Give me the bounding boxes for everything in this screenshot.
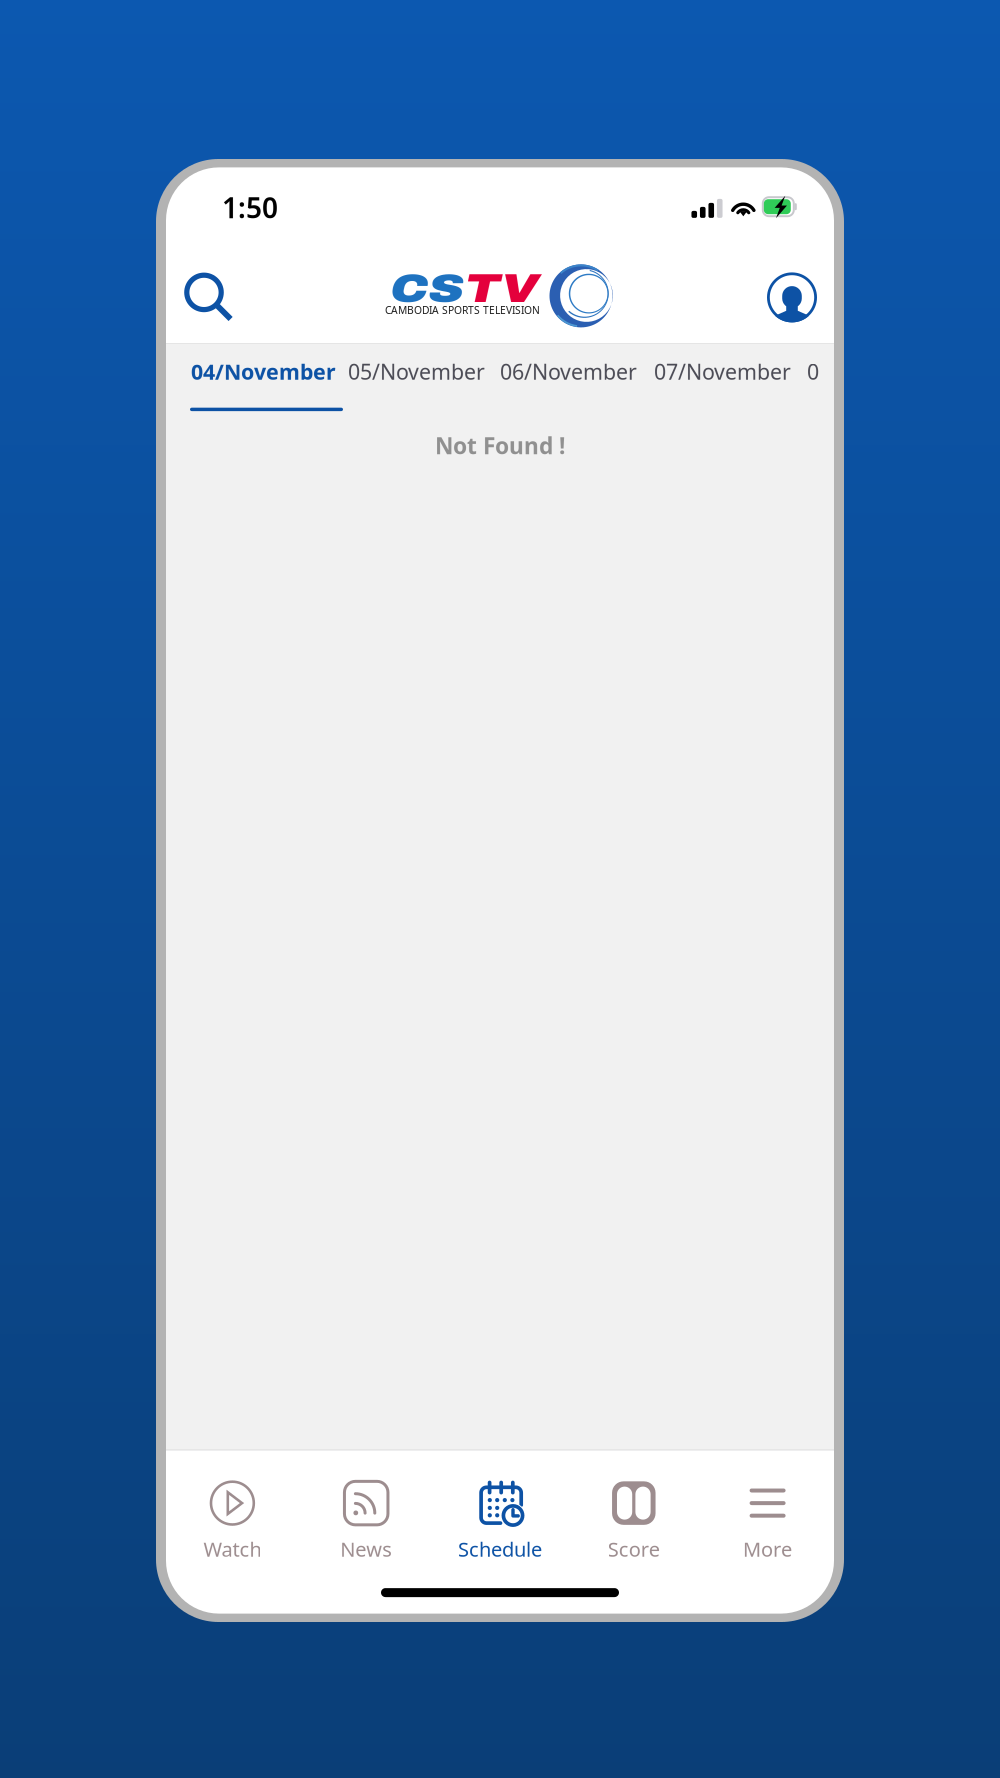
button[interactable]: Account <box>753 253 831 341</box>
staticText: News <box>340 1536 392 1562</box>
staticText: TV <box>464 266 526 311</box>
button[interactable]: Score <box>567 1450 701 1576</box>
button[interactable]: 0 <box>805 352 955 390</box>
button[interactable]: Search <box>170 253 248 341</box>
button[interactable]: Watch <box>165 1450 299 1576</box>
button[interactable]: Schedule <box>433 1450 567 1576</box>
staticText: 0 <box>807 357 819 385</box>
staticText: Score <box>608 1536 660 1562</box>
staticText: Not Found ! <box>435 430 565 460</box>
staticText: More <box>743 1536 792 1562</box>
staticText: CAMBODIA SPORTS TELEVISION <box>385 303 540 317</box>
staticText: 07/November <box>654 357 791 385</box>
button[interactable]: 04/November <box>189 352 339 390</box>
button[interactable]: 05/November <box>346 352 496 390</box>
staticText: 06/November <box>500 357 637 385</box>
button[interactable]: News <box>299 1450 433 1576</box>
button[interactable]: More <box>701 1450 834 1576</box>
staticText: 04/November <box>191 357 336 385</box>
button[interactable]: 07/November <box>652 352 802 390</box>
staticText: 05/November <box>348 357 485 385</box>
staticText: CS <box>402 266 464 311</box>
staticText: Watch <box>203 1536 261 1562</box>
button[interactable]: 06/November <box>498 352 648 390</box>
staticText: Schedule <box>458 1536 542 1562</box>
staticText: 1:50 <box>222 189 278 226</box>
